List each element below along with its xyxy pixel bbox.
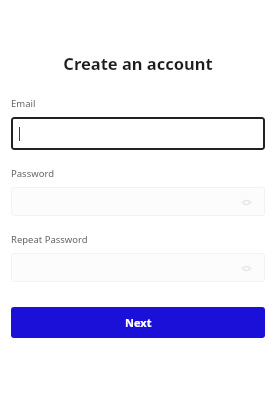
staticText: Repeat Password — [11, 233, 88, 246]
button[interactable]: Show repeated password — [238, 260, 254, 276]
button[interactable]: Show password — [11, 187, 265, 216]
button[interactable]: Next — [11, 307, 265, 338]
button[interactable]: Show password — [238, 194, 254, 210]
staticText: Email — [11, 97, 36, 110]
button[interactable] — [11, 117, 265, 150]
staticText: Create an account — [0, 52, 276, 74]
staticText: Next — [125, 315, 152, 330]
staticText: Password — [11, 167, 54, 180]
button[interactable]: Show repeated password — [11, 253, 265, 282]
